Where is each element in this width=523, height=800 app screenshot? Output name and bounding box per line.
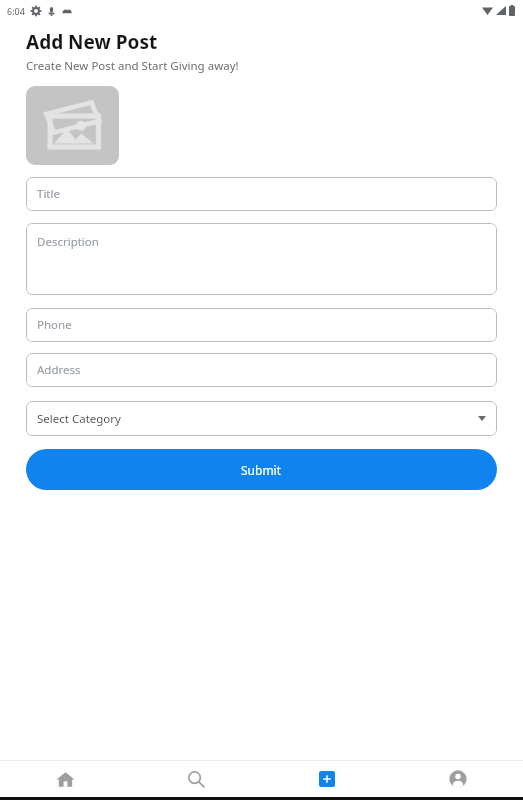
button[interactable]: Home [0, 761, 130, 797]
staticText: Address [37, 362, 81, 378]
button[interactable]: Description [26, 223, 497, 295]
button[interactable]: Address [26, 353, 497, 387]
staticText: Title [37, 186, 60, 202]
button[interactable]: Submit [26, 449, 497, 490]
button[interactable]: Pick image [26, 86, 119, 165]
button[interactable]: Search [130, 761, 261, 797]
button[interactable]: Add post [261, 761, 392, 797]
staticText: Submit [241, 462, 282, 478]
staticText: Create New Post and Start Giving away! [26, 58, 239, 74]
button[interactable]: Profile [392, 761, 523, 797]
staticText: 6:04 [7, 5, 25, 17]
staticText: Description [37, 234, 99, 250]
staticText: Select Category [37, 411, 121, 427]
button[interactable]: Phone [26, 308, 497, 342]
button[interactable]: Title [26, 177, 497, 211]
staticText: Phone [37, 317, 72, 333]
button[interactable]: Select Category [26, 401, 497, 436]
staticText: Add New Post [26, 29, 158, 55]
